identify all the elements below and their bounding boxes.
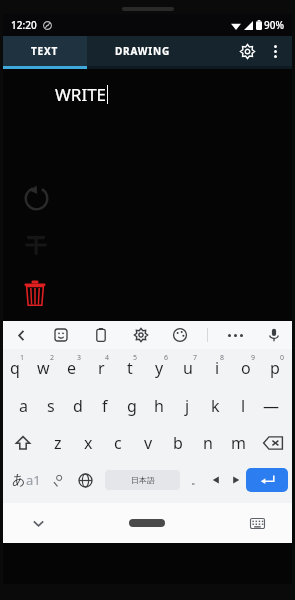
staticText: 90% [264, 18, 284, 32]
button[interactable]: s [37, 387, 64, 424]
staticText: j [185, 395, 190, 417]
button[interactable]: x [73, 424, 103, 461]
button[interactable]: r [89, 349, 118, 387]
staticText: — [263, 395, 280, 417]
staticText: q [10, 357, 20, 379]
button[interactable]: f [91, 387, 118, 424]
button[interactable]: Shift [3, 424, 43, 461]
button[interactable]: n [193, 424, 223, 461]
staticText: 6 [164, 353, 169, 363]
button[interactable]: Undo [15, 177, 57, 219]
staticText: x [84, 432, 93, 454]
button[interactable]: c [103, 424, 133, 461]
staticText: TEXT [31, 44, 59, 58]
button[interactable]: More [223, 323, 247, 347]
staticText: l [241, 395, 246, 417]
button[interactable]: あ [7, 461, 45, 499]
button[interactable]: q [3, 349, 31, 387]
staticText: o [241, 357, 251, 379]
staticText: t [127, 357, 133, 379]
staticText: c [114, 432, 122, 454]
button[interactable]: b [163, 424, 193, 461]
button[interactable]: DRAWING [87, 36, 197, 66]
button[interactable]: d [64, 387, 91, 424]
button[interactable]: a [10, 387, 37, 424]
button[interactable]: Keyboard settings [129, 323, 153, 347]
staticText: b [173, 432, 183, 454]
staticText: v [144, 432, 153, 454]
staticText: s [47, 395, 55, 417]
button[interactable]: i [205, 349, 234, 387]
staticText: 3 [77, 353, 82, 363]
staticText: m [231, 432, 246, 454]
button[interactable]: o [234, 349, 263, 387]
staticText: k [211, 395, 220, 417]
button[interactable]: u [176, 349, 205, 387]
staticText: WRITE [55, 83, 107, 106]
button[interactable]: e [60, 349, 89, 387]
staticText: f [102, 395, 108, 417]
staticText: i [215, 357, 220, 379]
button[interactable]: Home [129, 519, 165, 527]
button[interactable]: y [147, 349, 176, 387]
staticText: r [98, 357, 105, 379]
staticText: 5 [133, 353, 138, 363]
button[interactable]: z [43, 424, 73, 461]
button[interactable]: Stickers [49, 323, 73, 347]
staticText: 1 [20, 353, 25, 363]
staticText: 日本語 [131, 475, 155, 485]
staticText: 2 [50, 353, 55, 363]
button[interactable]: Clipboard [89, 323, 113, 347]
staticText: 8 [220, 353, 225, 363]
button[interactable]: Voice input [262, 323, 286, 347]
button[interactable]: 日本語 [105, 470, 180, 490]
button[interactable]: 。 [186, 461, 206, 499]
button[interactable]: TEXT [3, 36, 87, 66]
staticText: 7 [193, 353, 198, 363]
button[interactable]: — [257, 387, 285, 424]
button[interactable]: Settings [232, 36, 262, 66]
button[interactable]: j [173, 387, 201, 424]
staticText: d [73, 395, 83, 417]
button[interactable]: w [31, 349, 60, 387]
button[interactable]: Clear formatting [15, 224, 57, 266]
staticText: DRAWING [115, 44, 170, 58]
button[interactable]: l [229, 387, 257, 424]
staticText: 12:20 [11, 18, 37, 32]
button[interactable]: h [145, 387, 173, 424]
staticText: 。 [191, 473, 202, 487]
button[interactable]: Move cursor right [226, 461, 246, 499]
button[interactable]: t [118, 349, 147, 387]
button[interactable]: Enter [246, 468, 288, 492]
button[interactable]: Back [9, 323, 33, 347]
button[interactable]: Switch keyboard [240, 506, 274, 540]
staticText: a1 [26, 471, 41, 489]
staticText: y [155, 357, 164, 379]
staticText: w [37, 357, 50, 379]
staticText: p [270, 357, 280, 379]
button[interactable]: Symbols [45, 461, 71, 499]
staticText: u [183, 357, 193, 379]
staticText: e [67, 357, 77, 379]
button[interactable]: More options [262, 38, 288, 64]
staticText: 4 [105, 353, 110, 363]
staticText: あ [12, 471, 26, 487]
staticText: 9 [251, 353, 256, 363]
staticText: z [54, 432, 62, 454]
button[interactable]: Hide keyboard [21, 506, 55, 540]
staticText: a [19, 395, 28, 417]
staticText: g [127, 395, 137, 417]
button[interactable]: Change language [71, 461, 99, 499]
button[interactable]: v [133, 424, 163, 461]
button[interactable]: k [201, 387, 229, 424]
button[interactable]: Themes [168, 323, 192, 347]
button[interactable]: m [223, 424, 253, 461]
button[interactable]: Backspace [253, 424, 292, 461]
button[interactable]: g [118, 387, 145, 424]
staticText: n [203, 432, 213, 454]
staticText: 0 [280, 353, 285, 363]
button[interactable]: Delete [13, 271, 57, 315]
button[interactable]: Move cursor left [206, 461, 226, 499]
button[interactable]: p [263, 349, 292, 387]
staticText: h [154, 395, 164, 417]
